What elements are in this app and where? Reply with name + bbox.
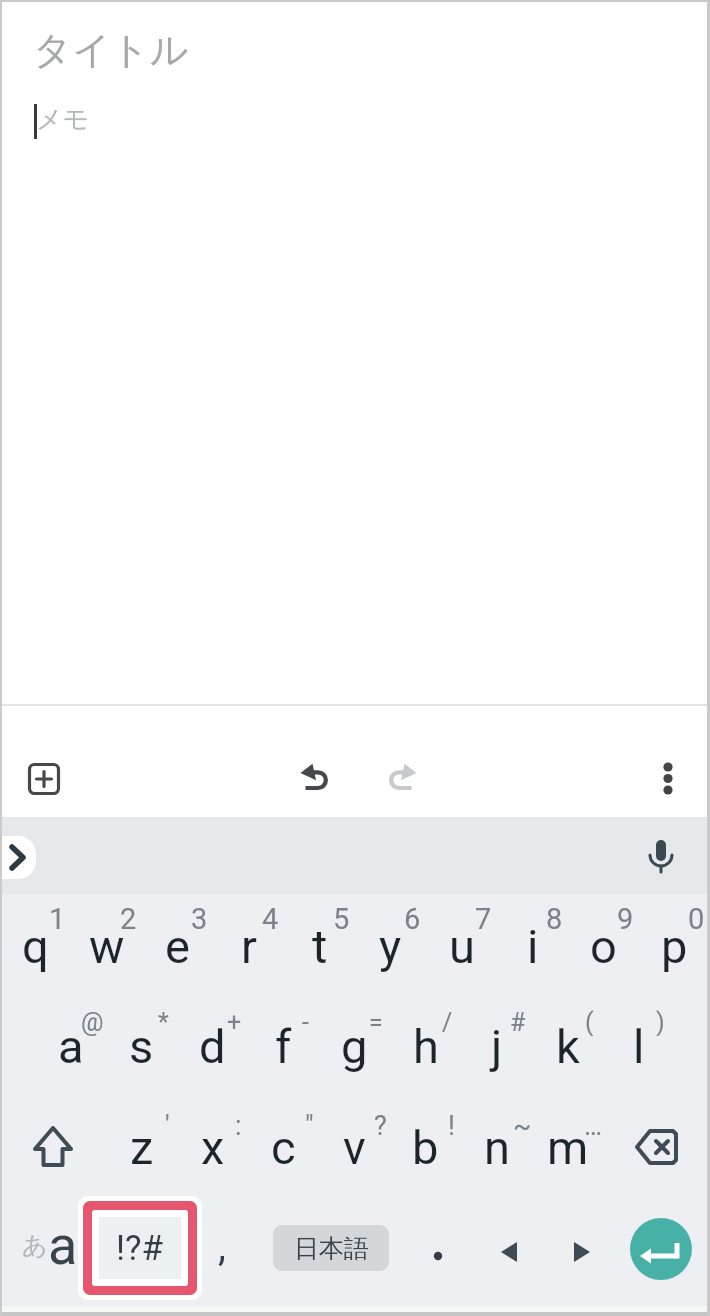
staticText: l bbox=[633, 1019, 645, 1074]
button[interactable]: w bbox=[71, 896, 142, 996]
staticText: / bbox=[442, 1008, 453, 1036]
button[interactable]: d bbox=[177, 996, 248, 1096]
button[interactable] bbox=[0, 96, 710, 148]
staticText: !?# bbox=[116, 1228, 164, 1269]
staticText: c bbox=[271, 1120, 296, 1175]
button[interactable]: y bbox=[355, 896, 426, 996]
button[interactable] bbox=[603, 1096, 710, 1198]
staticText: ? bbox=[374, 1110, 387, 1138]
button[interactable] bbox=[378, 757, 422, 801]
staticText: - bbox=[302, 1008, 309, 1036]
staticText: a bbox=[48, 1214, 78, 1277]
staticText: ) bbox=[656, 1008, 665, 1036]
button[interactable]: u bbox=[426, 896, 497, 996]
staticText: 2 bbox=[120, 902, 137, 930]
button[interactable]: l bbox=[603, 996, 674, 1096]
staticText: i bbox=[527, 919, 539, 974]
staticText: e bbox=[165, 919, 190, 974]
button[interactable] bbox=[545, 1198, 616, 1306]
staticText: + bbox=[227, 1008, 242, 1036]
staticText: w bbox=[89, 919, 125, 974]
button[interactable] bbox=[640, 834, 682, 882]
staticText: b bbox=[412, 1120, 439, 1175]
staticText: j bbox=[491, 1019, 503, 1074]
button[interactable] bbox=[0, 1096, 106, 1198]
button[interactable]: s bbox=[106, 996, 177, 1096]
button[interactable] bbox=[20, 755, 68, 803]
staticText: a bbox=[58, 1019, 84, 1074]
button[interactable]: x bbox=[177, 1096, 248, 1198]
staticText: z bbox=[130, 1120, 154, 1175]
staticText: g bbox=[341, 1019, 368, 1074]
staticText: あ bbox=[22, 1230, 48, 1261]
staticText: x bbox=[201, 1120, 225, 1175]
button[interactable]: c bbox=[248, 1096, 319, 1198]
staticText: 日本語 bbox=[294, 1233, 369, 1264]
button[interactable] bbox=[474, 1198, 545, 1306]
staticText: q bbox=[22, 919, 49, 974]
staticText: 7 bbox=[475, 902, 492, 930]
button[interactable]: j bbox=[461, 996, 532, 1096]
staticText: ' bbox=[165, 1110, 170, 1138]
button[interactable]: i bbox=[497, 896, 568, 996]
staticText: v bbox=[343, 1120, 366, 1175]
button[interactable] bbox=[100, 1198, 182, 1306]
staticText: u bbox=[449, 919, 475, 974]
staticText: , bbox=[218, 1223, 226, 1270]
staticText: 3 bbox=[191, 902, 208, 930]
staticText: y bbox=[379, 919, 402, 974]
button[interactable] bbox=[650, 750, 686, 808]
button[interactable]: z bbox=[106, 1096, 177, 1198]
button[interactable]: あ bbox=[0, 1191, 100, 1299]
button[interactable]: r bbox=[213, 896, 284, 996]
staticText: … bbox=[584, 1110, 603, 1138]
staticText: * bbox=[158, 1008, 169, 1036]
button[interactable]: n bbox=[461, 1096, 532, 1198]
button[interactable]: 日本語 bbox=[273, 1225, 389, 1271]
button[interactable]: m bbox=[532, 1096, 603, 1198]
button[interactable]: b bbox=[390, 1096, 461, 1198]
staticText: 5 bbox=[333, 902, 350, 930]
staticText: ( bbox=[585, 1008, 594, 1036]
button[interactable]: h bbox=[390, 996, 461, 1096]
button[interactable] bbox=[403, 1198, 473, 1306]
button[interactable]: p bbox=[639, 896, 710, 996]
staticText: # bbox=[510, 1008, 526, 1036]
staticText: ! bbox=[448, 1110, 455, 1138]
button[interactable]: e bbox=[142, 896, 213, 996]
staticText: 4 bbox=[262, 902, 279, 930]
staticText: = bbox=[369, 1008, 383, 1036]
staticText: s bbox=[129, 1019, 154, 1074]
staticText: d bbox=[199, 1019, 226, 1074]
button[interactable]: a bbox=[35, 996, 106, 1096]
staticText: @ bbox=[81, 1008, 104, 1036]
staticText: 6 bbox=[404, 902, 421, 930]
button[interactable]: q bbox=[0, 896, 71, 996]
staticText: f bbox=[275, 1019, 292, 1074]
button[interactable] bbox=[295, 757, 339, 801]
staticText: h bbox=[413, 1019, 439, 1074]
staticText: メモ bbox=[36, 103, 90, 136]
staticText: 0 bbox=[688, 902, 705, 930]
staticText: o bbox=[590, 919, 617, 974]
staticText: 9 bbox=[617, 902, 634, 930]
staticText: " bbox=[305, 1110, 314, 1138]
staticText: p bbox=[661, 919, 688, 974]
button[interactable] bbox=[0, 18, 710, 90]
staticText: 8 bbox=[546, 902, 563, 930]
button[interactable]: v bbox=[319, 1096, 390, 1198]
button[interactable]: g bbox=[319, 996, 390, 1096]
staticText: r bbox=[241, 919, 257, 974]
staticText: n bbox=[484, 1120, 510, 1175]
button[interactable]: t bbox=[284, 896, 355, 996]
staticText: t bbox=[312, 919, 328, 974]
staticText: ~ bbox=[513, 1110, 532, 1138]
button[interactable]: k bbox=[532, 996, 603, 1096]
button[interactable] bbox=[630, 1218, 692, 1280]
button[interactable] bbox=[0, 836, 36, 879]
staticText: : bbox=[235, 1110, 242, 1138]
staticText: 1 bbox=[49, 902, 66, 930]
button[interactable]: f bbox=[248, 996, 319, 1096]
button[interactable]: o bbox=[568, 896, 639, 996]
button[interactable]: , bbox=[187, 1198, 257, 1306]
